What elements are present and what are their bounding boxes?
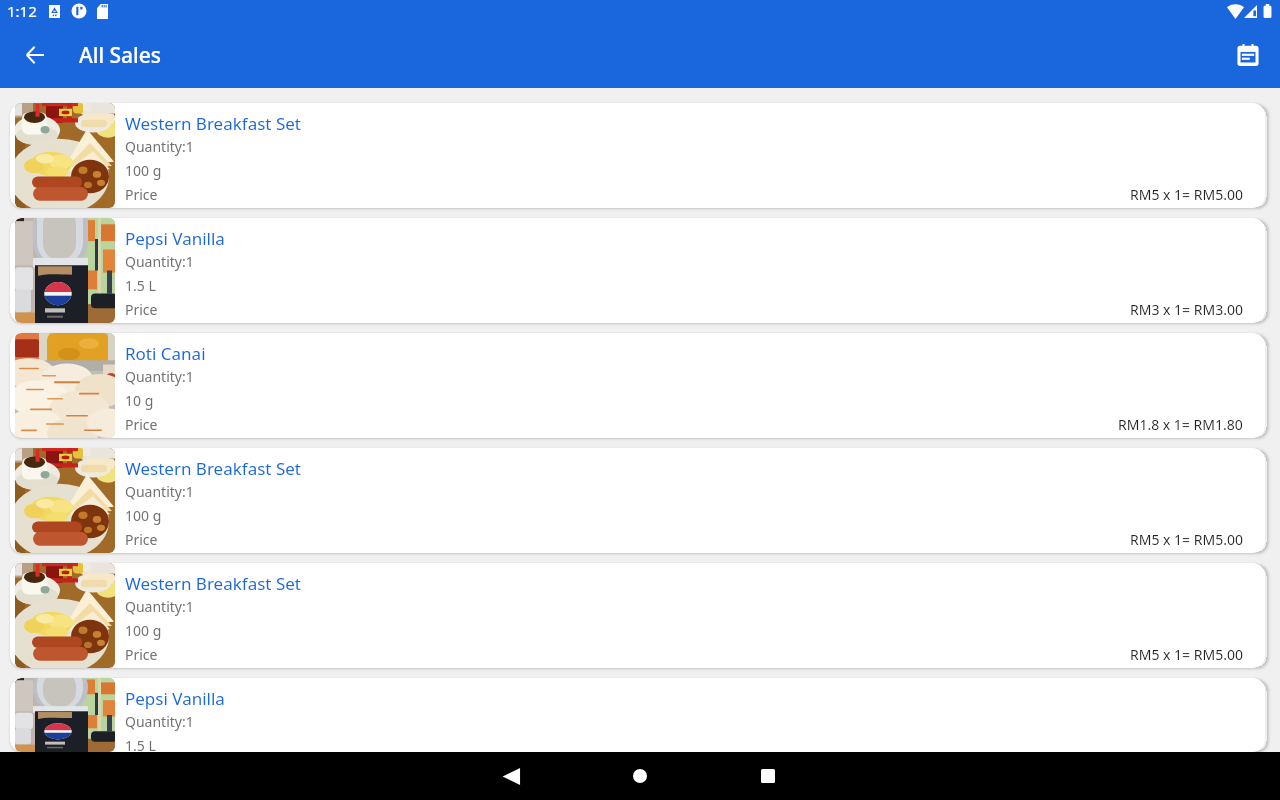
- staticText: RM5 x 1= RM5.00: [1130, 185, 1243, 204]
- button[interactable]: Western Breakfast Set: [10, 448, 1265, 553]
- staticText: Quantity:1: [125, 367, 194, 386]
- button[interactable]: Western Breakfast Set: [10, 103, 1265, 208]
- staticText: RM1.8 x 1= RM1.80: [1118, 415, 1243, 434]
- button[interactable]: Back: [15, 35, 55, 75]
- staticText: Quantity:1: [125, 482, 194, 501]
- staticText: Price: [125, 530, 158, 549]
- button[interactable]: Western Breakfast Set: [10, 563, 1265, 668]
- staticText: Roti Canai: [125, 342, 206, 365]
- staticText: Western Breakfast Set: [125, 457, 301, 480]
- staticText: 1:12: [7, 1, 37, 21]
- button[interactable]: Pepsi Vanilla: [10, 218, 1265, 323]
- staticText: Quantity:1: [125, 137, 194, 156]
- staticText: RM3 x 1= RM3.00: [1130, 300, 1243, 319]
- staticText: Quantity:1: [125, 252, 194, 271]
- staticText: 100 g: [125, 161, 162, 180]
- staticText: Western Breakfast Set: [125, 112, 301, 135]
- staticText: Quantity:1: [125, 597, 194, 616]
- button[interactable]: Pepsi Vanilla: [10, 678, 1265, 752]
- button[interactable]: Roti Canai: [10, 333, 1265, 438]
- staticText: Price: [125, 300, 158, 319]
- staticText: RM5 x 1= RM5.00: [1130, 530, 1243, 549]
- staticText: Pepsi Vanilla: [125, 227, 225, 250]
- staticText: Quantity:1: [125, 712, 194, 731]
- staticText: Price: [125, 645, 158, 664]
- staticText: 100 g: [125, 621, 162, 640]
- staticText: Price: [125, 415, 158, 434]
- staticText: Pepsi Vanilla: [125, 687, 225, 710]
- staticText: Price: [125, 185, 158, 204]
- staticText: Western Breakfast Set: [125, 572, 301, 595]
- button[interactable]: Calendar: [1226, 33, 1270, 77]
- button[interactable]: Back: [488, 752, 536, 800]
- button[interactable]: Home: [616, 752, 664, 800]
- staticText: RM5 x 1= RM5.00: [1130, 645, 1243, 664]
- staticText: 1.5 L: [125, 276, 156, 295]
- staticText: 100 g: [125, 506, 162, 525]
- staticText: All Sales: [79, 41, 162, 70]
- button[interactable]: Recent apps: [744, 752, 792, 800]
- staticText: 1.5 L: [125, 736, 156, 752]
- staticText: 10 g: [125, 391, 154, 410]
